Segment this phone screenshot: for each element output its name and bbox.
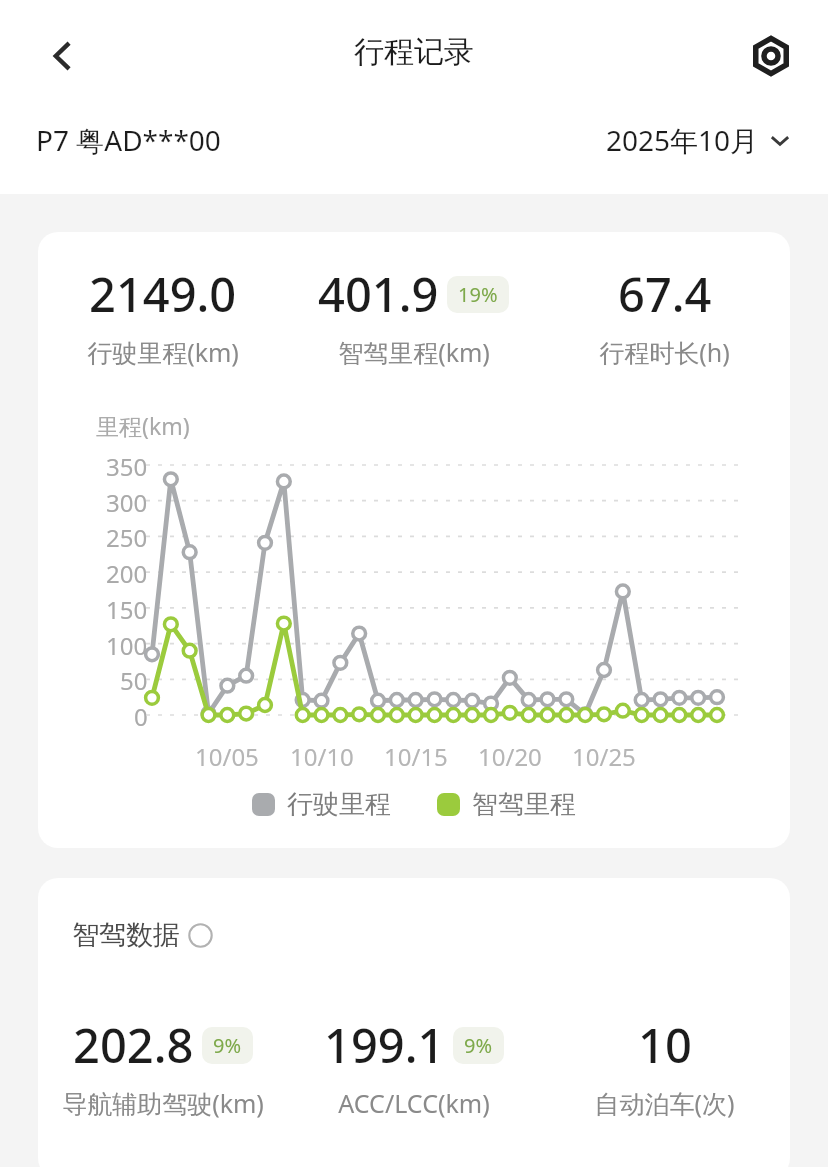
staticText: 401.9 [318,262,439,326]
button[interactable]: Back [28,21,98,91]
staticText: 行驶里程 [287,788,391,821]
staticText: 200 [106,557,148,590]
staticText: 智驾数据 [72,918,180,952]
staticText: 智驾里程(km) [338,335,490,369]
staticText: 250 [106,521,148,554]
button[interactable]: 2025年10月 [606,121,792,159]
button[interactable]: 67.4 [539,262,790,369]
button[interactable]: 199.1 [288,1013,539,1120]
staticText: 行程记录 [354,33,474,71]
staticText: 10 [638,1013,692,1077]
staticText: 2149.0 [89,262,237,326]
button[interactable]: 智驾数据 [72,918,213,952]
button[interactable]: 智驾里程 [437,788,576,821]
staticText: 202.8 [73,1013,194,1077]
button[interactable]: P7 粤AD***00 [36,121,221,159]
button[interactable]: 行驶里程 [252,788,391,821]
staticText: 9% [213,1032,242,1059]
staticText: 10/25 [572,740,636,773]
staticText: 里程(km) [96,410,190,441]
staticText: 300 [106,486,148,519]
staticText: 导航辅助驾驶(km) [62,1086,264,1120]
staticText: 50 [120,664,148,697]
staticText: 10/10 [290,740,354,773]
staticText: 10/05 [195,740,259,773]
staticText: 150 [106,593,148,626]
staticText: 智驾里程 [472,788,576,821]
button[interactable]: 401.9 [288,262,539,369]
staticText: ACC/LCC(km) [338,1086,490,1120]
staticText: 350 [106,450,148,483]
staticText: 行程时长(h) [599,335,730,369]
staticText: 2025年10月 [606,121,759,159]
button[interactable]: Settings [736,21,806,91]
button[interactable]: 202.8 [38,1013,288,1120]
staticText: 0 [134,700,148,733]
staticText: 9% [464,1032,493,1059]
staticText: 行驶里程(km) [87,335,239,369]
staticText: 10/20 [478,740,542,773]
staticText: 199.1 [324,1013,445,1077]
staticText: 自动泊车(次) [594,1086,735,1120]
button[interactable]: 10 [539,1013,790,1120]
button[interactable]: 2149.0 [38,262,288,369]
staticText: 10/15 [384,740,448,773]
staticText: 100 [106,629,148,662]
staticText: 19% [458,281,498,308]
staticText: 67.4 [618,262,712,326]
